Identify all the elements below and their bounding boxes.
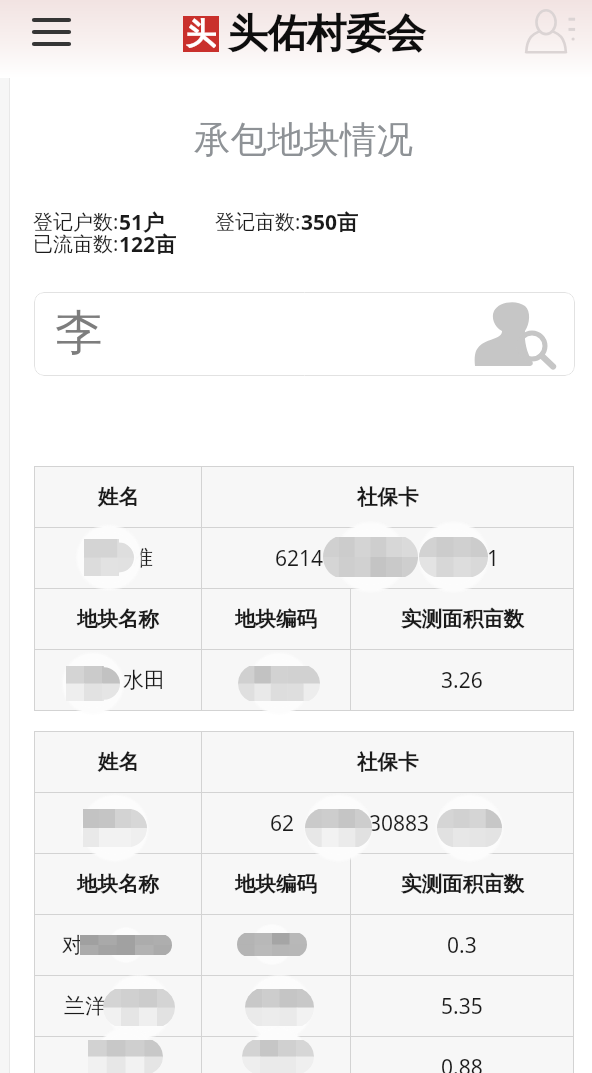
staticText: 登记亩数: — [215, 208, 301, 235]
staticText: 350亩 — [301, 208, 359, 237]
staticText: 社保卡 — [357, 749, 419, 775]
staticText: 0.3 — [447, 931, 477, 960]
staticText: 51户 — [119, 208, 165, 237]
staticText: 已流亩数: — [33, 230, 119, 257]
staticText: 头 — [186, 15, 216, 51]
staticText: 62 — [270, 809, 295, 838]
button[interactable]: Profile — [515, 0, 585, 68]
button[interactable]: Menu — [22, 3, 80, 61]
staticText: 姓名 — [98, 749, 139, 775]
staticText: 承包地块情况 — [194, 117, 413, 163]
staticText: 实测面积亩数 — [401, 871, 524, 897]
staticText: 地块编码 — [235, 606, 317, 632]
staticText: 地块编码 — [235, 871, 317, 897]
button[interactable]: 李 — [34, 292, 575, 376]
staticText: 122亩 — [119, 230, 177, 259]
staticText: 地块名称 — [77, 606, 159, 632]
staticText: 李 — [55, 303, 103, 363]
staticText: 3.26 — [441, 666, 483, 695]
staticText: 水田 — [123, 667, 165, 693]
staticText: 地块名称 — [77, 871, 159, 897]
staticText: 兰洋 — [64, 993, 106, 1019]
staticText: 登记户数: — [33, 208, 119, 235]
staticText: 准 — [132, 545, 153, 571]
staticText: 对 — [62, 932, 83, 958]
staticText: 5.35 — [441, 992, 483, 1021]
staticText: 姓名 — [98, 484, 139, 510]
staticText: 实测面积亩数 — [401, 606, 524, 632]
staticText: 1 — [487, 544, 500, 573]
staticText: 头佑村委会 — [228, 9, 426, 59]
staticText: 0.88 — [441, 1053, 483, 1073]
staticText: 6214 — [275, 544, 324, 573]
staticText: 社保卡 — [357, 484, 419, 510]
staticText: 30883 — [369, 809, 430, 838]
